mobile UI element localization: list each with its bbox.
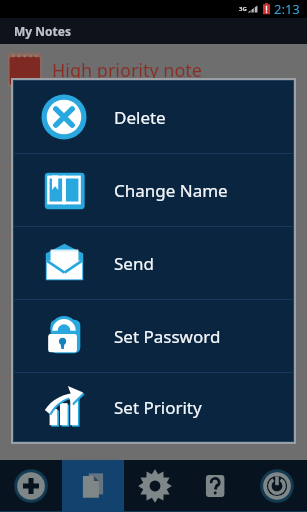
staticText: Change Name — [114, 179, 228, 202]
button[interactable]: Set Priority — [14, 373, 293, 441]
staticText: 2:13 — [274, 0, 300, 18]
button[interactable]: Set Password — [14, 300, 293, 372]
staticText: My Notes — [14, 23, 71, 39]
staticText: Send — [114, 252, 154, 275]
button[interactable]: Help — [185, 460, 246, 512]
button[interactable]: Settings — [124, 460, 185, 512]
button[interactable]: Delete — [14, 81, 293, 153]
staticText: Set Priority — [114, 396, 202, 419]
button[interactable]: Exit — [246, 460, 307, 512]
button[interactable]: Change Name — [14, 154, 293, 226]
staticText: High priority note — [52, 58, 202, 83]
button[interactable]: Notes — [62, 460, 124, 512]
button[interactable]: Send — [14, 227, 293, 299]
staticText: Set Password — [114, 325, 221, 348]
staticText: 3G — [239, 5, 247, 13]
button[interactable]: Add — [0, 460, 62, 512]
staticText: Delete — [114, 106, 166, 129]
